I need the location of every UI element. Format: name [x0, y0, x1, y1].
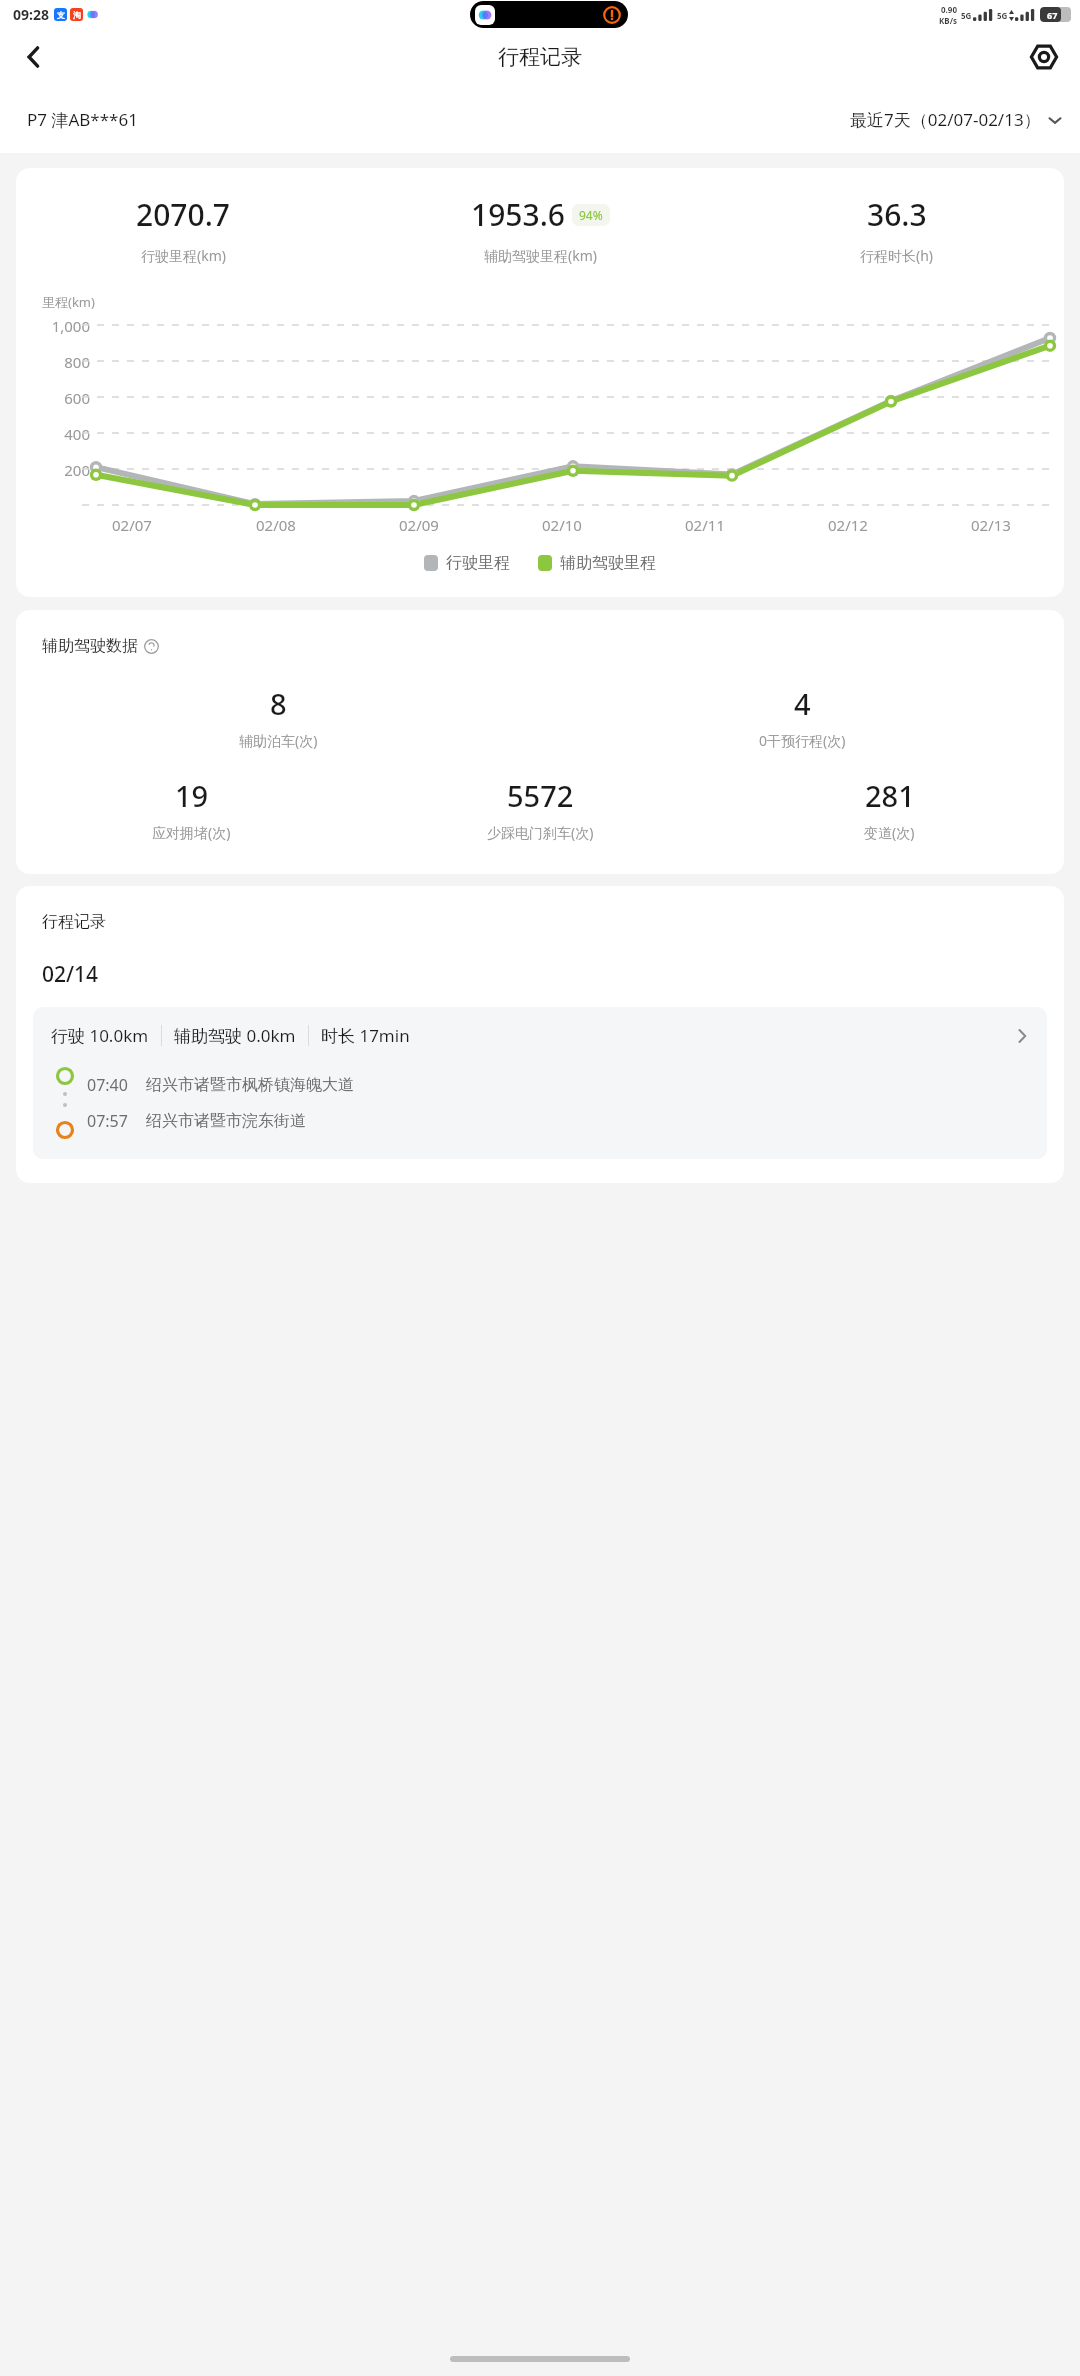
staticText: 600	[64, 388, 90, 408]
staticText: 1953.6	[471, 194, 565, 235]
staticText: 0.90	[941, 4, 957, 15]
staticText: 行程时长(h)	[860, 246, 934, 265]
staticText: 02/09	[399, 515, 439, 535]
button[interactable]: 行驶 10.0km	[33, 1007, 1047, 1159]
staticText: P7 津AB***61	[27, 108, 138, 131]
staticText: 02/08	[256, 515, 296, 535]
staticText: 行程记录	[42, 912, 106, 932]
staticText: 02/11	[685, 515, 725, 535]
staticText: 02/12	[828, 515, 868, 535]
staticText: 07:57	[87, 1110, 128, 1132]
staticText: 行驶里程(km)	[141, 246, 226, 265]
staticText: 02/14	[42, 960, 99, 989]
button[interactable]: Back	[8, 31, 60, 83]
staticText: 绍兴市诸暨市浣东街道	[146, 1111, 306, 1131]
staticText: 时长 17min	[321, 1024, 410, 1047]
staticText: 绍兴市诸暨市枫桥镇海魄大道	[146, 1075, 354, 1095]
staticText: 辅助驾驶里程	[560, 553, 656, 573]
staticText: 2070.7	[136, 194, 230, 235]
staticText: 4	[794, 684, 811, 723]
staticText: 1,000	[51, 316, 90, 336]
staticText: 最近7天（02/07-02/13）	[850, 108, 1041, 131]
staticText: 行程记录	[498, 44, 582, 70]
staticText: 5G	[997, 10, 1008, 21]
staticText: 02/07	[112, 515, 152, 535]
staticText: 800	[64, 352, 90, 372]
staticText: 5G	[961, 10, 972, 21]
staticText: 281	[865, 776, 915, 815]
staticText: 辅助驾驶数据	[42, 636, 138, 656]
staticText: 94%	[579, 207, 603, 223]
staticText: 8	[270, 684, 287, 723]
staticText: 辅助泊车(次)	[239, 731, 318, 750]
staticText: 07:40	[87, 1074, 128, 1096]
staticText: 200	[64, 460, 90, 480]
staticText: KB/s	[939, 15, 957, 26]
staticText: 行驶 10.0km	[51, 1024, 149, 1047]
staticText: 辅助驾驶里程(km)	[484, 246, 597, 265]
staticText: 应对拥堵(次)	[152, 823, 231, 842]
staticText: 淘	[73, 10, 81, 20]
staticText: 36.3	[867, 194, 927, 235]
staticText: 400	[64, 424, 90, 444]
staticText: 行驶里程	[446, 553, 510, 573]
staticText: 19	[175, 776, 209, 815]
staticText: 里程(km)	[42, 293, 95, 311]
button[interactable]: 辅助驾驶里程	[538, 553, 656, 573]
staticText: 0干预行程(次)	[759, 731, 846, 750]
staticText: 少踩电门刹车(次)	[487, 823, 594, 842]
button[interactable]: 最近7天（02/07-02/13）	[850, 108, 1066, 131]
staticText: 67	[1047, 9, 1058, 21]
staticText: 辅助驾驶 0.0km	[174, 1024, 296, 1047]
button[interactable]: 行驶里程	[424, 553, 510, 573]
staticText: 09:28	[13, 5, 49, 24]
staticText: 5572	[507, 776, 574, 815]
button[interactable]: Info	[141, 636, 161, 656]
staticText: 支	[57, 10, 65, 20]
button[interactable]: Settings	[1018, 31, 1070, 83]
staticText: 变道(次)	[864, 823, 915, 842]
staticText: 02/10	[542, 515, 582, 535]
staticText: 02/13	[971, 515, 1011, 535]
